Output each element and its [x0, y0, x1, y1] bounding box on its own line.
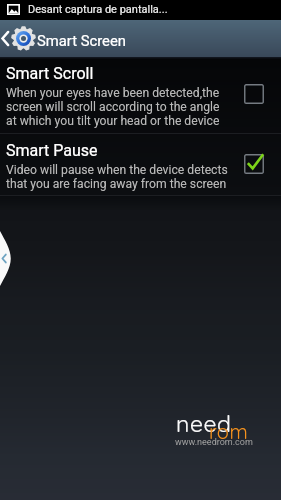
- button[interactable]: Navigate up: [0, 20, 281, 57]
- staticText: Smart Screen: [37, 32, 126, 49]
- staticText: Desant captura de pantalla...: [28, 3, 168, 16]
- staticText: Smart Pause: [6, 141, 98, 160]
- staticText: rom: [209, 419, 249, 444]
- button[interactable]: Disable Smart Pause: [228, 134, 281, 195]
- staticText: www.needrom.com: [175, 437, 253, 448]
- staticText: Smart Scroll: [6, 64, 94, 83]
- button[interactable]: Enable Smart Scroll: [228, 57, 281, 133]
- staticText: Video will pause when the device detects…: [6, 163, 228, 191]
- button[interactable]: Open side panel: [0, 231, 11, 286]
- staticText: When your eyes have been detected,the sc…: [6, 86, 220, 128]
- button[interactable]: Smart Pause: [0, 134, 281, 195]
- staticText: need: [176, 409, 232, 438]
- button[interactable]: Smart Scroll: [0, 57, 281, 133]
